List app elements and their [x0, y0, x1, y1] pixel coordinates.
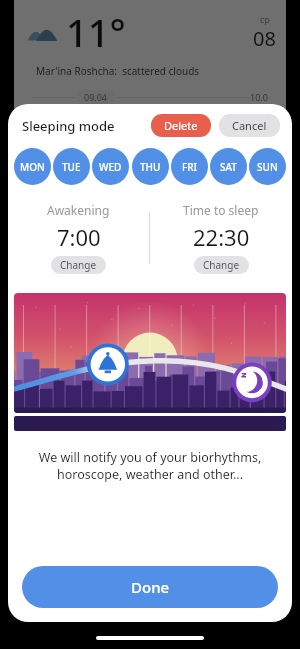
staticText: cp	[260, 13, 270, 25]
staticText: Sleeping mode	[22, 117, 115, 135]
staticText: SAT	[220, 160, 237, 174]
button[interactable]: Done	[22, 566, 278, 608]
button[interactable]: THU	[132, 148, 169, 185]
button[interactable]: TUE	[53, 148, 90, 185]
staticText: SUN	[257, 160, 278, 174]
button[interactable]: Change	[194, 256, 249, 274]
button[interactable]: SUN	[249, 148, 286, 185]
staticText: MON	[20, 160, 45, 174]
button[interactable]: Delete	[151, 114, 211, 137]
staticText: Change	[60, 258, 97, 272]
staticText: FRI	[182, 160, 198, 174]
staticText: Mar'ina Roshcha: scattered clouds	[36, 64, 200, 78]
staticText: 7:00	[57, 222, 101, 252]
staticText: 11°	[66, 6, 126, 58]
staticText: TUE	[62, 160, 81, 174]
staticText: 15	[190, 112, 201, 124]
staticText: 09.04	[84, 91, 108, 103]
staticText: Change	[203, 258, 240, 272]
staticText: 22:30	[193, 222, 250, 252]
staticText: Awakening	[47, 202, 110, 218]
staticText: Done	[131, 577, 170, 597]
button[interactable]: Cancel	[219, 114, 280, 137]
button[interactable]: MON	[14, 148, 51, 185]
staticText: THU	[140, 160, 161, 174]
button[interactable]: SAT	[210, 148, 247, 185]
staticText: 9	[146, 112, 152, 124]
staticText: Time to sleep	[183, 202, 259, 218]
staticText: We will notify you of your biorhythms, h…	[20, 449, 280, 483]
staticText: 21	[238, 112, 249, 124]
staticText: 08	[253, 25, 276, 52]
button[interactable]: WED	[92, 148, 129, 185]
staticText: 0	[262, 112, 268, 124]
button[interactable]: Change	[51, 256, 106, 274]
staticText: 10.0	[250, 91, 268, 103]
staticText: 12	[166, 112, 177, 124]
staticText: WED	[99, 160, 122, 174]
staticText: Delete	[164, 118, 198, 133]
staticText: 18	[214, 112, 225, 124]
button[interactable]: FRI	[171, 148, 208, 185]
staticText: Cancel	[232, 118, 267, 133]
